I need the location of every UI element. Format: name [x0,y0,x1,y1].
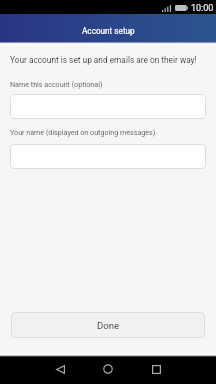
staticText: 10:00 [191,3,214,14]
button[interactable]: Home [92,354,124,384]
staticText: Account setup [82,26,135,36]
staticText: Name this account (optional) [10,80,103,88]
button[interactable] [10,94,206,119]
staticText: Your name (displayed on outgoing message… [10,128,156,136]
button[interactable]: Recents [140,354,172,384]
button[interactable]: Done [11,312,205,338]
button[interactable]: Back [44,354,76,384]
staticText: Your account is set up and emails are on… [10,55,197,65]
staticText: Done [97,320,120,331]
button[interactable] [10,144,206,169]
